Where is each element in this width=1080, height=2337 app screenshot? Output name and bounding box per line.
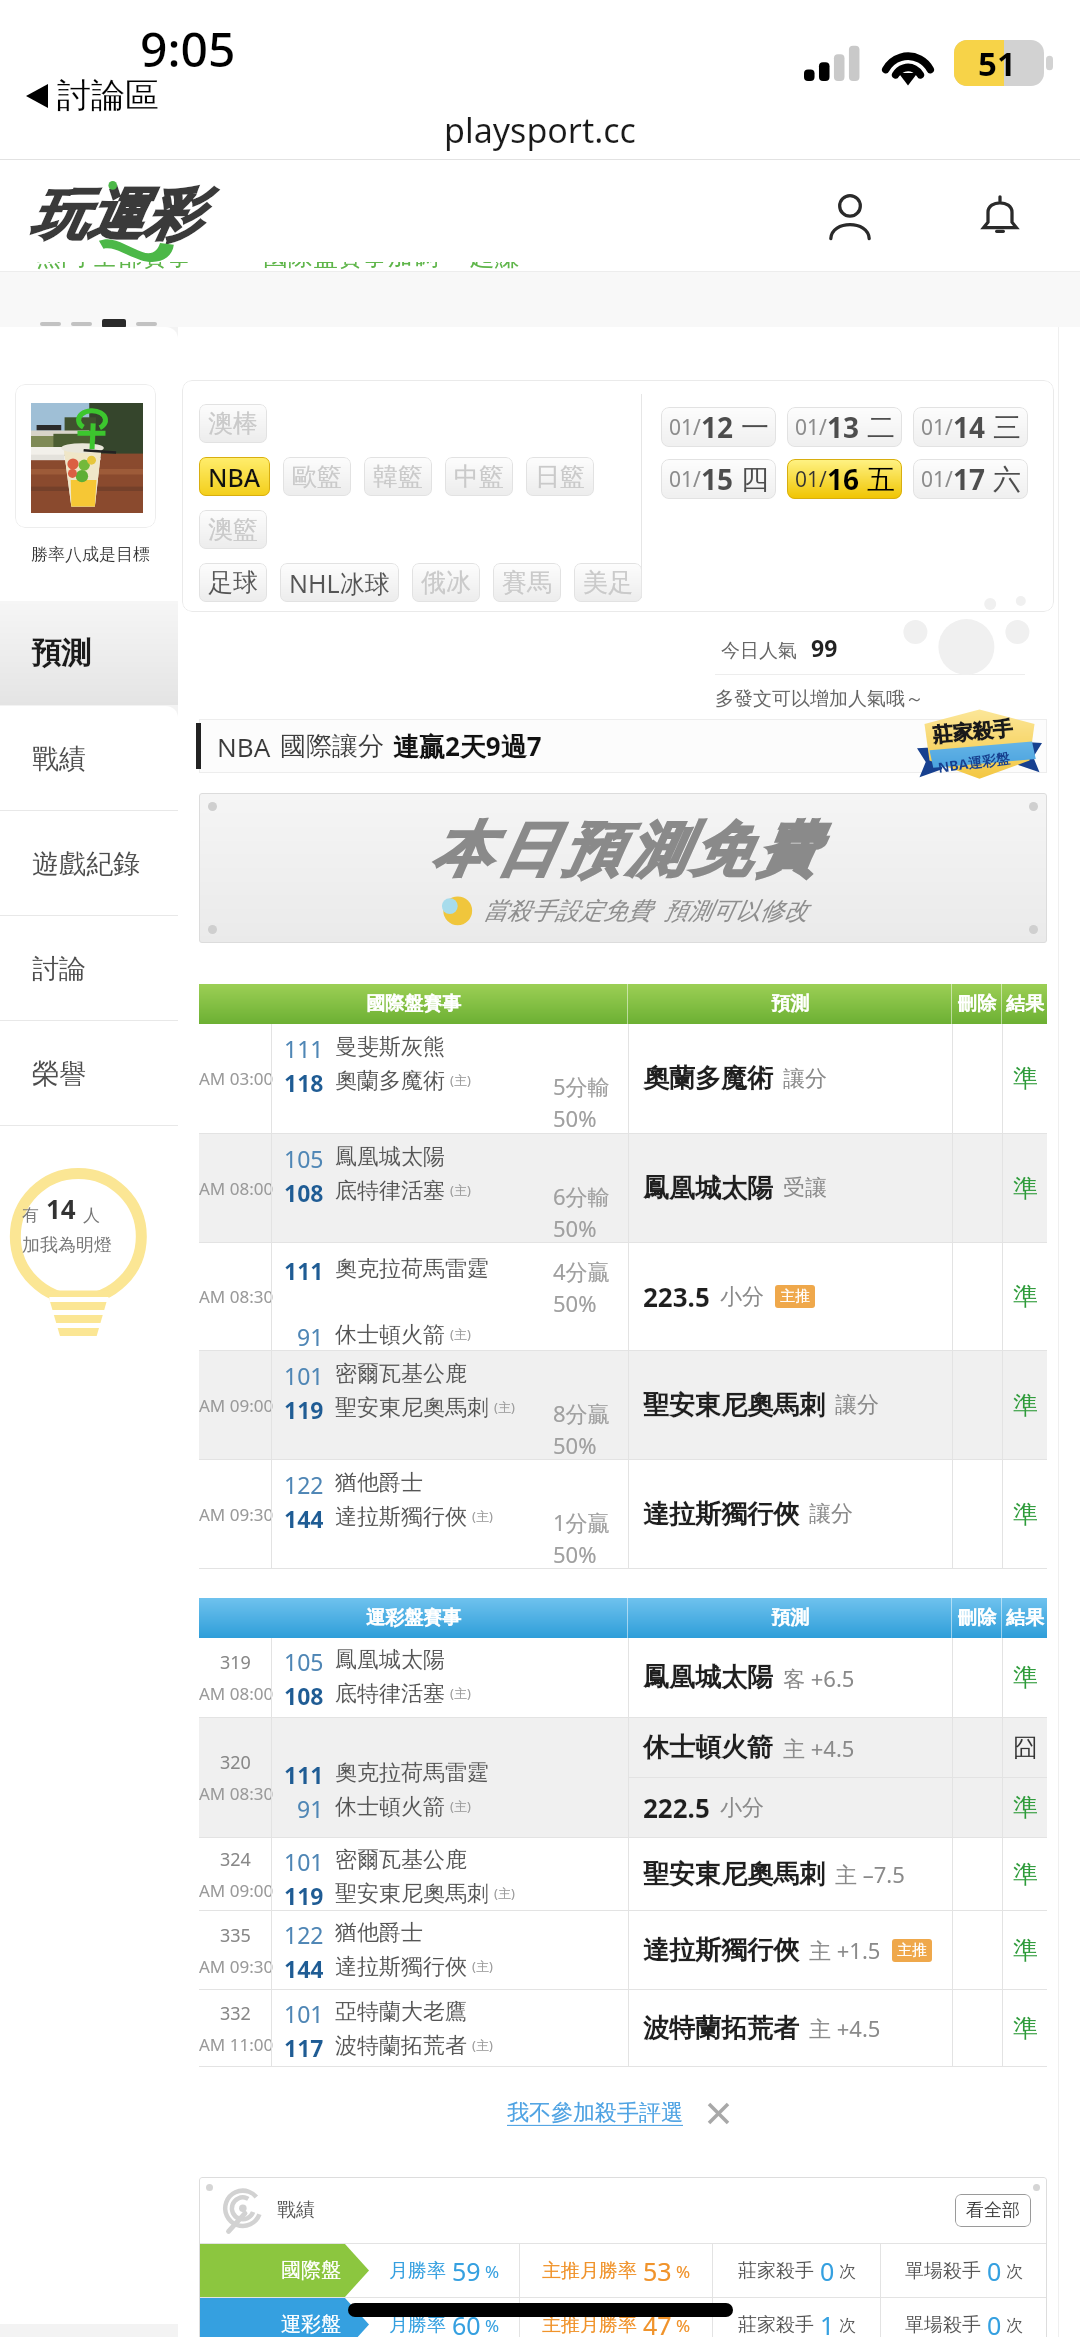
staticText: 105 (284, 1143, 324, 1169)
staticText: (主) (450, 1684, 471, 1702)
staticText: 4分贏 (553, 1256, 610, 1286)
staticText: 01/ (921, 465, 953, 494)
button[interactable]: 看全部 (955, 2194, 1031, 2227)
button[interactable]: 戰績 (0, 706, 178, 811)
staticText: 運彩盤賽事 (366, 1606, 461, 1630)
staticText: 主 +4.5 (783, 1733, 855, 1763)
staticText: 準 (1013, 1662, 1038, 1693)
staticText: 小分 (720, 1794, 764, 1822)
staticText: 休士頓火箭 (643, 1731, 773, 1764)
staticText: (主) (494, 1398, 515, 1416)
staticText: 主推月勝率 (542, 2313, 637, 2337)
staticText: 讓分 (835, 1391, 879, 1419)
staticText: 105 (284, 1646, 324, 1672)
staticText: 運彩盤 (281, 2312, 341, 2337)
button[interactable]: 01/ (661, 407, 776, 447)
staticText: 小分 (720, 1283, 764, 1311)
staticText: 刪除 (958, 992, 996, 1016)
staticText: 0 (987, 2254, 1002, 2288)
staticText: 91 (297, 1321, 324, 1347)
button[interactable]: 01/ (661, 459, 776, 499)
button[interactable]: NHL冰球 (280, 563, 399, 602)
staticText: 國際盤賽事 (366, 992, 461, 1016)
button[interactable]: Close (703, 2098, 733, 2128)
button[interactable]: 賽馬 (493, 563, 561, 602)
staticText: 我不參加殺手評選 (507, 2099, 683, 2127)
staticText: 加我為明燈 (22, 1234, 112, 1257)
staticText: 休士頓火箭 (335, 1793, 445, 1819)
staticText: 有 (22, 1205, 39, 1226)
staticText: (主) (472, 1957, 493, 1975)
staticText: AM 08:30 (199, 1285, 271, 1308)
staticText: 鳳凰城太陽 (335, 1646, 445, 1672)
staticText: 主 +4.5 (809, 2013, 881, 2043)
staticText: 準 (1013, 1859, 1038, 1890)
staticText: 聖安東尼奧馬刺 (335, 1880, 489, 1906)
button[interactable]: Profile photo (15, 384, 156, 528)
staticText: NBA (208, 460, 261, 494)
staticText: 47 (643, 2308, 672, 2337)
staticText: 準 (1013, 1499, 1038, 1530)
button[interactable]: 01/ (913, 459, 1028, 499)
staticText: 53 (643, 2254, 672, 2288)
button[interactable]: 歐籃 (283, 457, 351, 496)
staticText: 今日人氣 (721, 639, 797, 663)
staticText: 119 (284, 1394, 324, 1420)
button[interactable]: 日籃 (526, 457, 594, 496)
staticText: 次 (839, 2315, 856, 2336)
staticText: 5分輸 (553, 1071, 610, 1101)
staticText: 達拉斯獨行俠 (643, 1934, 799, 1967)
button[interactable]: 預測 (0, 601, 178, 705)
button[interactable]: 澳棒 (199, 404, 267, 443)
staticText: 預測 (771, 992, 809, 1016)
button[interactable]: 美足 (574, 563, 642, 602)
staticText: AM 08:30 (199, 1782, 271, 1805)
staticText: 50% (553, 1288, 597, 1318)
button[interactable]: Notifications (954, 170, 1046, 262)
staticText: 韓籃 (373, 461, 423, 492)
staticText: 曼斐斯灰熊 (335, 1033, 445, 1059)
staticText: 50% (553, 1430, 597, 1460)
button[interactable]: NBA (199, 457, 270, 496)
staticText: 01/ (921, 413, 953, 442)
staticText: % (676, 2260, 691, 2283)
button[interactable]: 足球 (199, 563, 267, 602)
staticText: 密爾瓦基公鹿 (335, 1846, 467, 1872)
staticText: 次 (1006, 2261, 1023, 2282)
button[interactable]: 韓籃 (364, 457, 432, 496)
button[interactable]: 澳籃 (199, 510, 267, 549)
button[interactable]: 01/ (913, 407, 1028, 447)
staticText: 看全部 (966, 2199, 1020, 2222)
button[interactable]: 榮譽 (0, 1021, 178, 1126)
staticText: 準 (1013, 1063, 1038, 1094)
button[interactable]: 討論 (0, 916, 178, 1021)
button[interactable]: 01/ (787, 459, 902, 499)
staticText: 222.5 (643, 1790, 710, 1825)
button[interactable]: 01/ (787, 407, 902, 447)
staticText: 奧蘭多魔術 (643, 1062, 773, 1095)
staticText: 達拉斯獨行俠 (335, 1953, 467, 1979)
staticText: 達拉斯獨行俠 (335, 1503, 467, 1529)
staticText: (主) (450, 1797, 471, 1815)
staticText: 主推 (780, 1287, 810, 1306)
staticText: 01/ (795, 413, 827, 442)
staticText: 猶他爵士 (335, 1919, 423, 1945)
staticText: 50% (553, 1213, 597, 1243)
staticText: AM 08:00 (199, 1682, 271, 1705)
button[interactable]: 我不參加殺手評選 (507, 2099, 683, 2127)
button[interactable]: 俄冰 (412, 563, 480, 602)
staticText: 中籃 (454, 461, 504, 492)
button[interactable]: Account (804, 170, 896, 262)
staticText: 波特蘭拓荒者 (643, 2012, 799, 2045)
staticText: (主) (450, 1325, 471, 1343)
staticText: 101 (284, 1360, 324, 1386)
staticText: 讓分 (809, 1500, 853, 1528)
staticText: (主) (450, 1071, 471, 1089)
button[interactable]: 遊戲紀錄 (0, 811, 178, 916)
staticText: 0 (820, 2254, 835, 2288)
button[interactable]: 中籃 (445, 457, 513, 496)
staticText: 本日預測免費 (428, 813, 818, 887)
staticText: 遊戲紀錄 (32, 847, 140, 881)
staticText: playsport.cc (444, 107, 636, 153)
staticText: 一 (741, 410, 769, 445)
